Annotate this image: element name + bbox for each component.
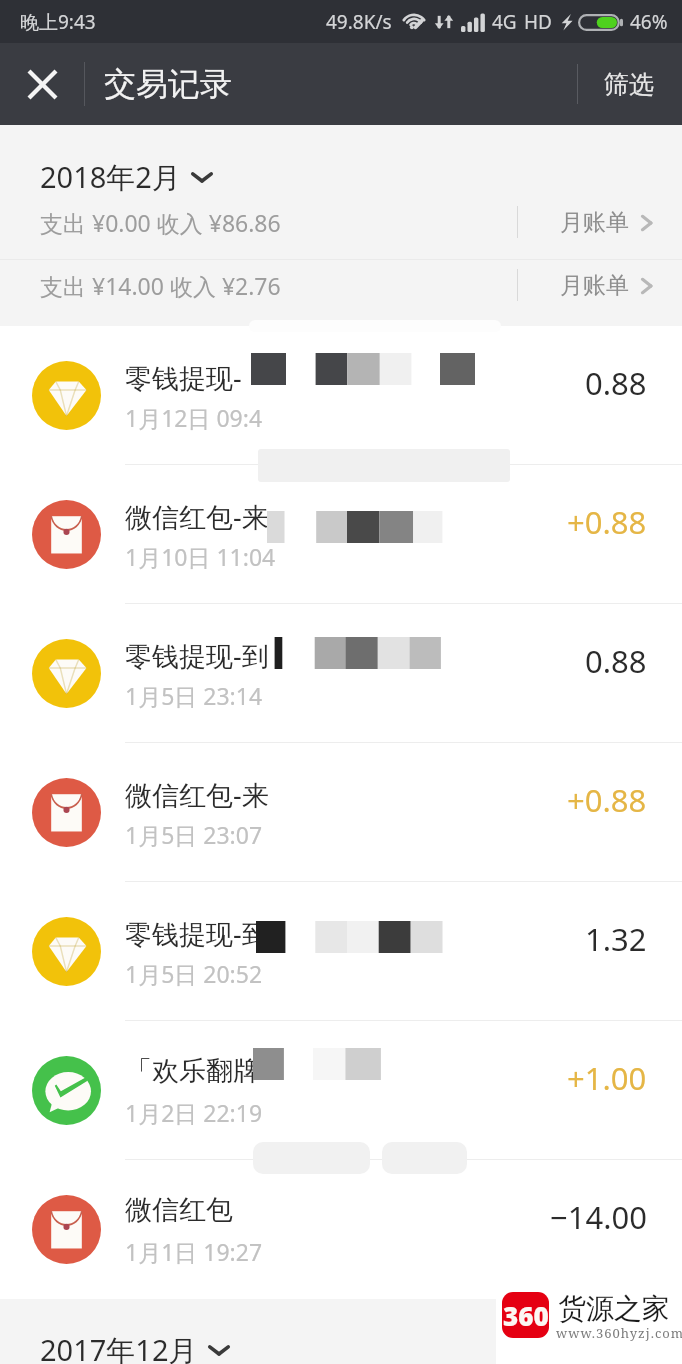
staticText: +0.88: [567, 779, 647, 821]
staticText: 2018年2月: [40, 157, 181, 197]
button[interactable]: 2017年12月: [0, 1326, 246, 1364]
button[interactable]: 2018年2月: [0, 153, 229, 201]
staticText: 0.88: [585, 362, 647, 404]
staticText: 微信红包: [125, 1193, 233, 1227]
staticText: 4G: [492, 9, 517, 35]
staticText: 微信红包-来: [125, 498, 269, 535]
staticText: +0.88: [567, 501, 647, 543]
staticText: 交易记录: [104, 64, 232, 104]
button[interactable]: 月账单: [536, 202, 682, 243]
staticText: 1月12日 09:4: [125, 402, 263, 433]
staticText: www.360hyzj.com: [556, 1324, 682, 1342]
staticText: 零钱提现-: [125, 359, 242, 396]
staticText: 月账单: [560, 208, 629, 237]
staticText: 货源之家: [558, 1291, 670, 1326]
button[interactable]: 月账单: [536, 265, 682, 306]
staticText: 1.32: [585, 918, 647, 960]
staticText: 「欢乐翻牌: [125, 1054, 260, 1088]
staticText: 月账单: [560, 271, 629, 300]
staticText: 1月10日 11:04: [125, 541, 276, 572]
staticText: 1月1日 19:27: [125, 1236, 263, 1267]
staticText: 46%: [630, 9, 668, 35]
button[interactable]: Close: [0, 43, 85, 125]
staticText: 1月5日 23:14: [125, 680, 263, 711]
staticText: 360: [503, 1298, 549, 1333]
staticText: 1月2日 22:19: [125, 1097, 263, 1128]
staticText: 1月5日 20:52: [125, 958, 263, 989]
staticText: −14.00: [550, 1196, 647, 1238]
staticText: 支出 ¥0.00 收入 ¥86.86: [40, 207, 281, 238]
staticText: HD: [524, 9, 552, 35]
staticText: 1月5日 23:07: [125, 819, 263, 850]
staticText: 2017年12月: [40, 1330, 198, 1364]
button[interactable]: 零钱提现-到: [0, 882, 682, 1021]
staticText: 零钱提现-到: [125, 637, 269, 674]
button[interactable]: 零钱提现-: [0, 326, 682, 465]
button[interactable]: 微信红包: [0, 1160, 682, 1299]
staticText: 晚上9:43: [20, 9, 96, 35]
staticText: 微信红包-来: [125, 776, 269, 813]
button[interactable]: 「欢乐翻牌: [0, 1021, 682, 1160]
staticText: 零钱提现-到: [125, 915, 269, 952]
button[interactable]: 微信红包-来: [0, 465, 682, 604]
staticText: 支出 ¥14.00 收入 ¥2.76: [40, 270, 281, 301]
staticText: 0.88: [585, 640, 647, 682]
button[interactable]: 筛选: [578, 49, 682, 120]
button[interactable]: 零钱提现-到: [0, 604, 682, 743]
staticText: 49.8K/s: [326, 9, 392, 35]
staticText: 筛选: [604, 69, 654, 100]
button[interactable]: 微信红包-来: [0, 743, 682, 882]
staticText: +1.00: [567, 1057, 647, 1099]
